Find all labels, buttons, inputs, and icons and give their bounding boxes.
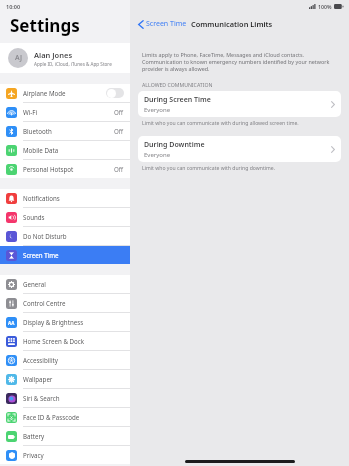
button[interactable]: General [0,275,130,294]
staticText: Wallpaper [23,375,124,383]
staticText: Alan Jones [34,50,73,60]
staticText: 100% [318,3,332,10]
staticText: Home Screen & Dock [23,337,124,345]
staticText: Screen Time [23,251,124,259]
staticText: Limit who you can communicate with durin… [142,120,299,127]
button[interactable]: Face ID & Passcode [0,408,130,427]
staticText: Limits apply to Phone, FaceTime, Message… [142,51,337,72]
staticText: Everyone [144,151,171,159]
button[interactable]: Notifications [0,189,130,208]
staticText: Display & Brightness [23,318,124,326]
staticText: Personal Hotspot [23,165,114,173]
staticText: Bluetooth [23,127,114,135]
staticText: During Screen Time [144,95,211,105]
staticText: Face ID & Passcode [23,413,124,421]
button[interactable]: During Downtime [138,136,341,162]
staticText: Control Centre [23,299,124,307]
button[interactable]: Wi-Fi [0,103,130,122]
staticText: Communication Limits [191,19,273,29]
button[interactable]: Control Centre [0,294,130,313]
staticText: Privacy [23,451,124,459]
button[interactable]: AJ [0,43,130,73]
staticText: Notifications [23,194,124,202]
staticText: Do Not Disturb [23,232,124,240]
button[interactable]: Siri & Search [0,389,130,408]
staticText: Off [114,165,124,173]
staticText: Limit who you can communicate with durin… [142,165,276,172]
staticText: Settings [10,14,80,37]
staticText: Wi-Fi [23,108,114,116]
button[interactable]: Personal Hotspot [0,160,130,178]
button[interactable]: Battery [0,427,130,446]
staticText: AA [8,320,15,326]
button[interactable]: AA [0,313,130,332]
button[interactable]: Privacy [0,446,130,464]
button[interactable]: During Screen Time [138,91,341,117]
button[interactable]: Accessibility [0,351,130,370]
staticText: Everyone [144,106,171,114]
button[interactable]: Home Screen & Dock [0,332,130,351]
staticText: Apple ID, iCloud, iTunes & App Store [34,61,112,67]
staticText: 10:00 [6,3,21,10]
staticText: Off [114,108,124,116]
staticText: Sounds [23,213,124,221]
staticText: ALLOWED COMMUNICATION [142,81,213,88]
button[interactable]: Screen Time [0,246,130,264]
staticText: Mobile Data [23,146,124,154]
staticText: Siri & Search [23,394,124,402]
staticText: During Downtime [144,140,205,150]
button[interactable]: Sounds [0,208,130,227]
staticText: AJ [15,53,22,63]
button[interactable]: Screen Time [136,17,189,31]
staticText: Accessibility [23,356,124,364]
button[interactable]: Airplane Mode [0,84,130,103]
staticText: General [23,280,124,288]
button[interactable]: Bluetooth [0,122,130,141]
staticText: Battery [23,432,124,440]
button[interactable]: Wallpaper [0,370,130,389]
staticText: Screen Time [146,19,187,29]
button[interactable]: Mobile Data [0,141,130,160]
staticText: Off [114,127,124,135]
staticText: Airplane Mode [23,89,106,97]
button[interactable]: Do Not Disturb [0,227,130,246]
